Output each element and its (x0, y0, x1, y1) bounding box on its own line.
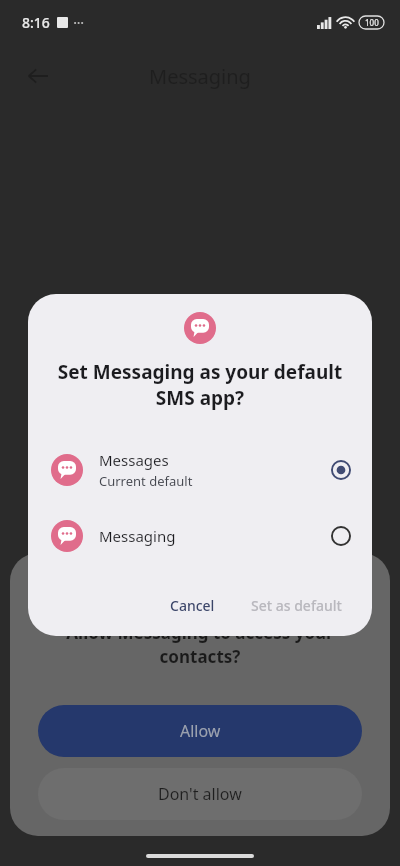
button[interactable]: Messaging (28, 503, 372, 569)
staticText: 100 (365, 17, 379, 28)
staticText: 8:16 (22, 13, 50, 32)
staticText: Set as default (251, 596, 342, 615)
button[interactable]: Don't allow (38, 768, 362, 820)
staticText: Messaging (149, 63, 251, 90)
button[interactable]: Messages (28, 437, 372, 503)
button[interactable]: Set as default (239, 587, 354, 624)
button[interactable]: Allow (38, 705, 362, 757)
staticText: Messaging (99, 526, 176, 546)
staticText: Messages (99, 450, 169, 470)
staticText: Cancel (170, 596, 215, 615)
button[interactable]: Cancel (158, 587, 227, 624)
staticText: Allow Messaging to access your contacts? (34, 621, 366, 668)
staticText: Allow (180, 720, 221, 742)
staticText: Current default (99, 472, 193, 490)
staticText: Set Messaging as your default SMS app? (48, 359, 352, 411)
staticText: Don't allow (158, 783, 242, 805)
